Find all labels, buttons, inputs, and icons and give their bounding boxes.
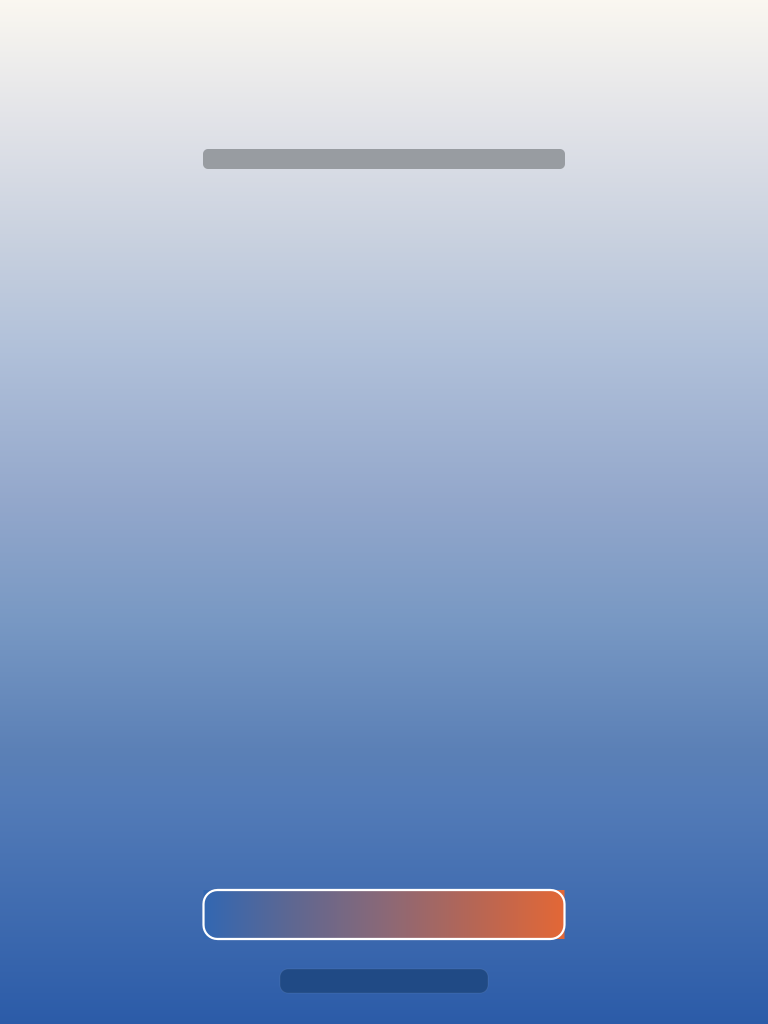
button[interactable]: Not now [280, 969, 488, 993]
button[interactable]: Continue [203, 890, 564, 939]
